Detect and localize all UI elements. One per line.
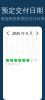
- staticText: 26: [26, 51, 30, 55]
- staticText: 四: [26, 38, 29, 41]
- staticText: 预定交付日期: [1, 6, 43, 15]
- staticText: 5: [27, 42, 29, 46]
- staticText: 9: [11, 45, 13, 49]
- staticText: 20: [31, 48, 35, 52]
- staticText: 24: [15, 51, 19, 55]
- staticText: 16: [10, 48, 14, 52]
- staticText: 3: [16, 42, 18, 46]
- staticText: 18: [20, 48, 24, 52]
- staticText: 15: [5, 48, 9, 52]
- button[interactable]: Day 2: [10, 59, 14, 62]
- staticText: 4: [21, 42, 23, 46]
- staticText: 13: [31, 45, 35, 49]
- button[interactable]: Day 4: [18, 59, 22, 62]
- staticText: 23: [10, 51, 14, 55]
- staticText: 28: [36, 51, 40, 55]
- staticText: 22: [5, 51, 9, 55]
- staticText: 二: [16, 38, 19, 41]
- staticText: 21: [36, 48, 40, 52]
- staticText: 11: [20, 45, 24, 49]
- staticText: 请选择您希望的交付日期: [0, 16, 44, 21]
- button[interactable]: Day 1: [5, 59, 10, 62]
- button[interactable]: Next month: [34, 30, 40, 36]
- staticText: 7: [37, 42, 39, 46]
- staticText: 五: [31, 38, 34, 41]
- staticText: 2: [11, 42, 13, 46]
- staticText: 已选择 6 天: [5, 62, 21, 66]
- button[interactable]: Previous month: [5, 30, 11, 36]
- staticText: 三: [21, 38, 24, 41]
- staticText: 14: [36, 45, 40, 49]
- staticText: 6: [32, 42, 34, 46]
- button[interactable]: Day 7: [30, 59, 34, 62]
- staticText: 日: [6, 38, 9, 41]
- staticText: 12: [26, 45, 30, 49]
- button[interactable]: Day 8: [34, 59, 38, 62]
- staticText: 1: [6, 42, 8, 46]
- staticText: 10: [15, 45, 19, 49]
- button[interactable]: Day 6: [26, 59, 30, 62]
- staticText: 一: [11, 38, 14, 41]
- staticText: 27: [31, 51, 35, 55]
- staticText: 19: [26, 48, 30, 52]
- staticText: 六: [36, 38, 39, 41]
- staticText: 8: [6, 45, 8, 49]
- button[interactable]: Day 5: [22, 59, 26, 62]
- staticText: 2025 年 6 月: [12, 30, 33, 36]
- staticText: 25: [20, 51, 24, 55]
- button[interactable]: Day 3: [14, 59, 18, 62]
